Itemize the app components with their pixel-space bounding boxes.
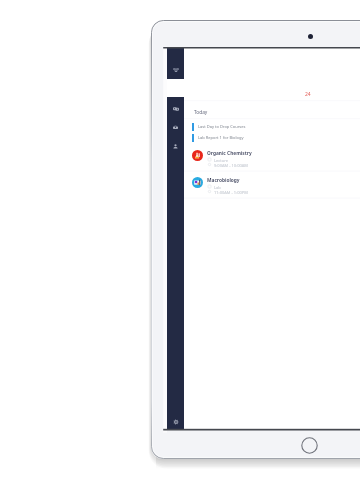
staticText: Macrobiology	[207, 177, 240, 184]
button[interactable]: Assignments	[167, 118, 184, 137]
button[interactable]: Lab Report 1 for Biology	[184, 133, 360, 142]
button[interactable]: Organic Chemistry	[184, 148, 360, 174]
button[interactable]: Settings	[167, 414, 184, 429]
staticText: Lecture	[214, 158, 229, 163]
button[interactable]: Messages	[167, 99, 184, 118]
staticText: 9:00AM - 10:00AM	[214, 163, 248, 168]
button[interactable]: Profile	[167, 137, 184, 156]
button[interactable]: Last Day to Drop Courses	[184, 122, 360, 131]
staticText: Organic Chemistry	[207, 150, 252, 157]
staticText: Today	[194, 109, 208, 116]
button[interactable]: Dashboard	[167, 47, 184, 79]
staticText: 24	[305, 91, 311, 98]
staticText: Lab	[214, 185, 221, 190]
button[interactable]: Macrobiology	[184, 175, 360, 201]
staticText: 11:00AM - 1:00PM	[214, 190, 248, 195]
staticText: Lab Report 1 for Biology	[198, 135, 244, 140]
staticText: Last Day to Drop Courses	[198, 124, 246, 129]
